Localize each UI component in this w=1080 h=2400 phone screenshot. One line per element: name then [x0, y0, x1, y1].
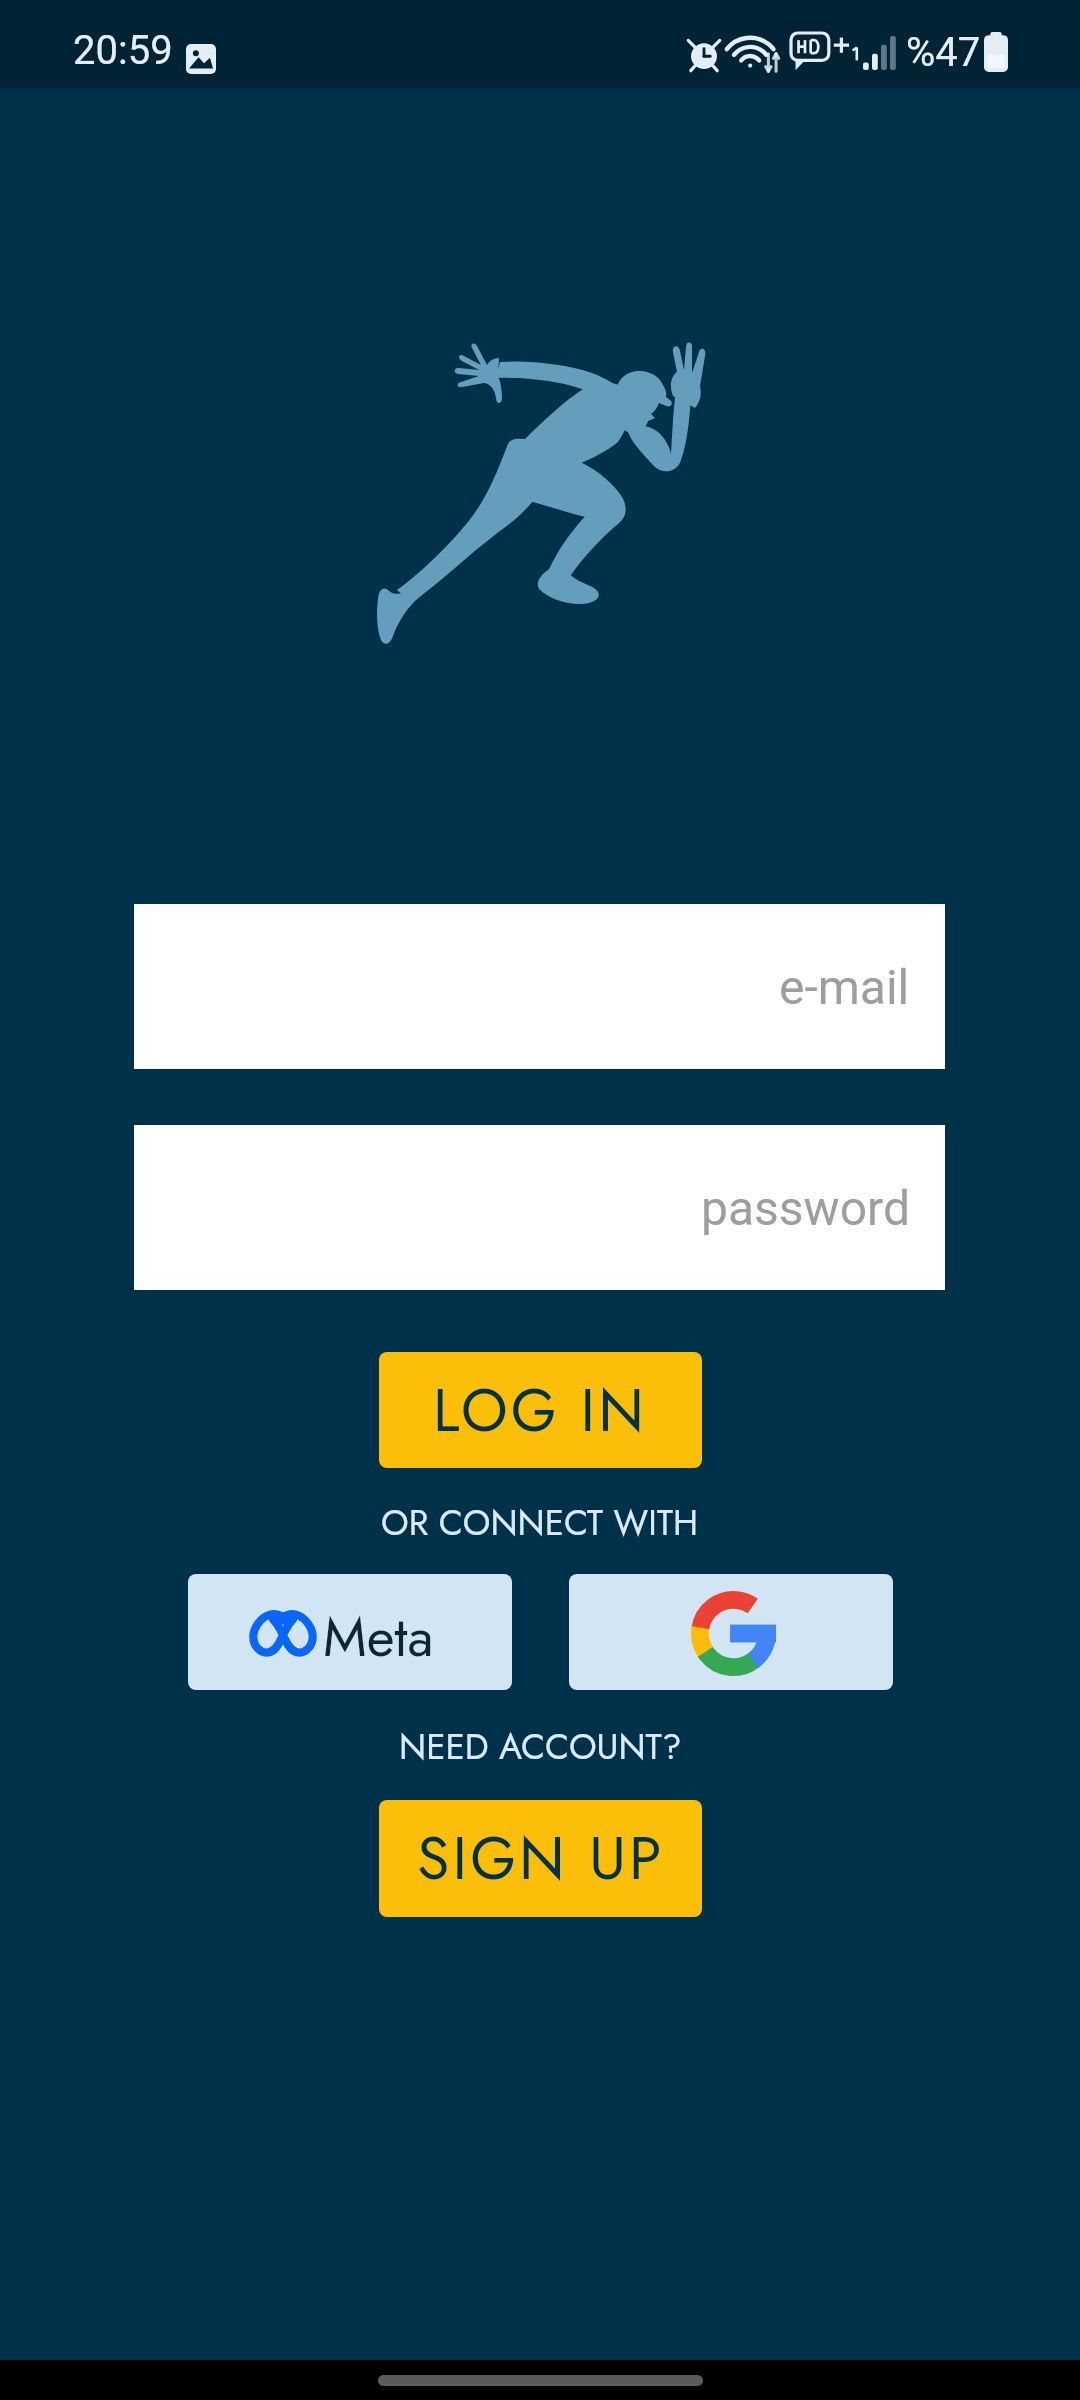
staticText: %47	[906, 29, 981, 76]
staticText: SIGN UP	[417, 1816, 665, 1901]
staticText: LOG IN	[433, 1368, 648, 1453]
button[interactable]: Connect with Google	[569, 1574, 893, 1690]
button[interactable]: LOG IN	[379, 1352, 702, 1468]
staticText: Meta	[323, 1598, 434, 1676]
staticText: password	[701, 1180, 910, 1236]
button[interactable]: e-mail	[134, 904, 945, 1069]
button[interactable]: password	[134, 1125, 945, 1290]
other: Running app logo	[370, 340, 710, 650]
button[interactable]: Connect with Meta	[188, 1574, 512, 1690]
button[interactable]: SIGN UP	[379, 1800, 702, 1917]
staticText: 20:59	[73, 27, 173, 74]
staticText: NEED ACCOUNT?	[399, 1722, 682, 1773]
staticText: e-mail	[779, 959, 910, 1015]
staticText: OR CONNECT WITH	[381, 1498, 699, 1549]
